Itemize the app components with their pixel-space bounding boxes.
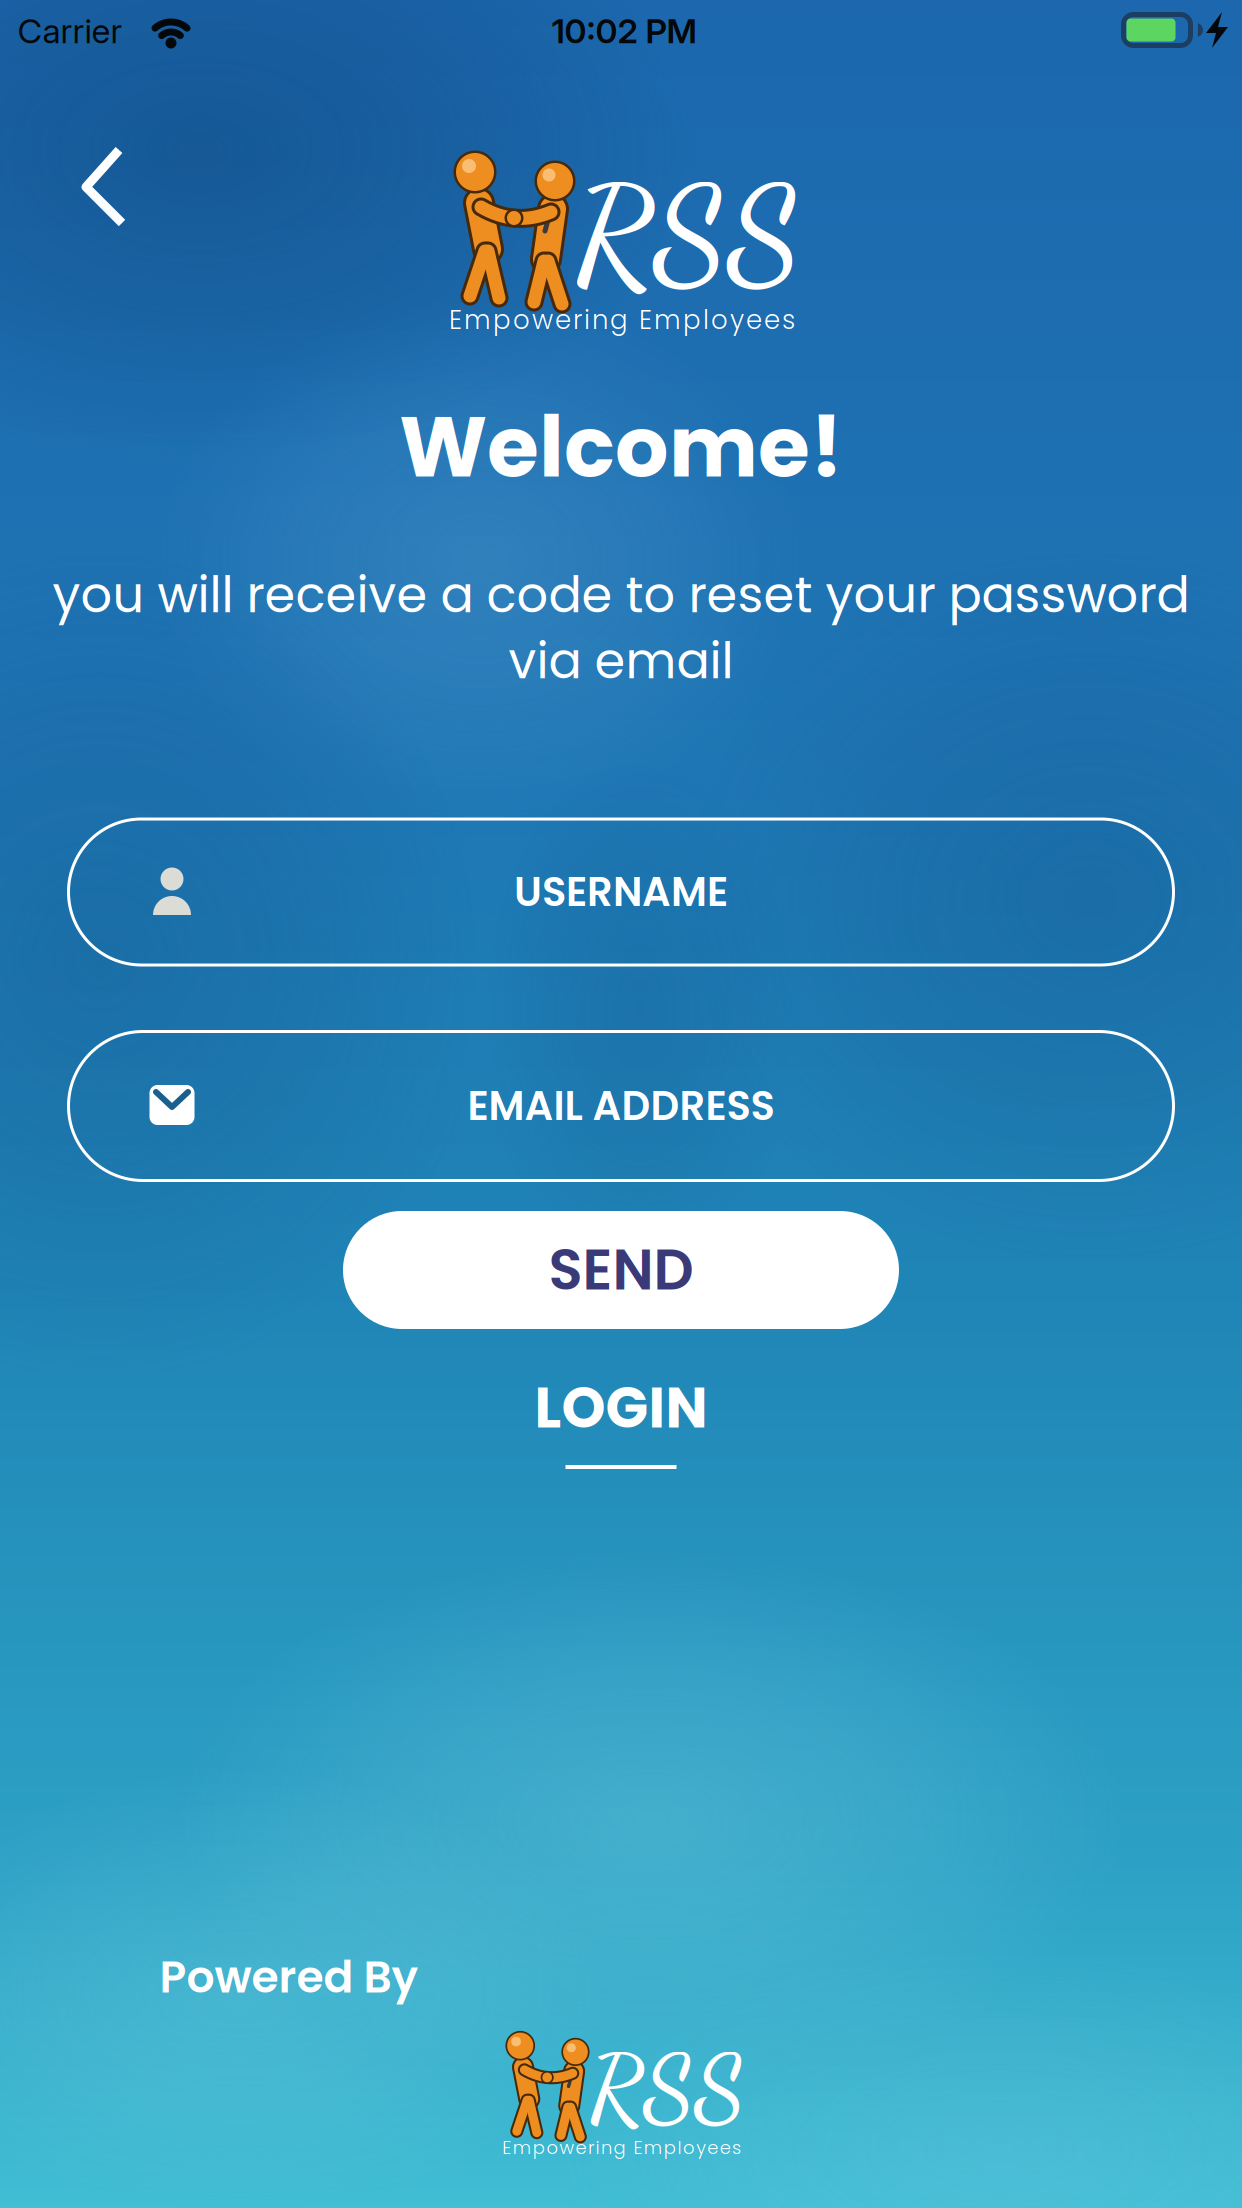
staticText: RSS xyxy=(573,155,800,315)
staticText: Carrier xyxy=(17,10,122,51)
staticText: 10:02 PM xyxy=(551,10,696,51)
staticText: EMAIL ADDRESS xyxy=(467,1078,774,1134)
staticText: via email xyxy=(508,626,733,696)
staticText: USERNAME xyxy=(514,864,728,920)
staticText: E m p o w e r i n g E m p l o y e e s xyxy=(449,2154,795,2190)
staticText: you will receive a code to reset your pa… xyxy=(52,560,1189,630)
staticText: Powered By xyxy=(159,1946,418,2008)
staticText: SEND xyxy=(548,1231,693,1309)
staticText: E m p o w e r i n g E m p l o y e e s xyxy=(449,302,795,338)
button[interactable]: Email address xyxy=(67,1030,1175,1182)
button[interactable]: Username xyxy=(67,817,1175,966)
button[interactable]: LOGIN xyxy=(511,1367,731,1491)
staticText: LOGIN xyxy=(534,1369,707,1447)
button[interactable]: SEND xyxy=(343,1211,899,1329)
staticText: Welcome! xyxy=(399,388,843,506)
staticText: RSS xyxy=(573,2007,800,2167)
button[interactable]: Back xyxy=(60,132,150,242)
